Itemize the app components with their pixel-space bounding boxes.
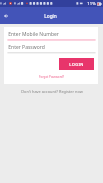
staticText: 11% bbox=[87, 1, 96, 7]
button[interactable]: Enter Password bbox=[7, 42, 95, 52]
button[interactable]: LOGIN bbox=[59, 58, 94, 70]
staticText: Enter Password bbox=[8, 44, 45, 51]
button[interactable]: Enter Mobile Number bbox=[7, 29, 95, 39]
button[interactable]: Forgot Password? bbox=[39, 75, 64, 79]
staticText: LOGIN bbox=[69, 62, 84, 67]
staticText: Enter Mobile Number bbox=[8, 31, 59, 38]
staticText: Forgot Password? bbox=[39, 75, 64, 79]
staticText: Don't have account? Register now bbox=[21, 89, 83, 94]
staticText: Login bbox=[44, 13, 57, 20]
button[interactable]: Don't have account? Register now bbox=[21, 89, 83, 94]
button[interactable]: Back bbox=[0, 10, 11, 21]
